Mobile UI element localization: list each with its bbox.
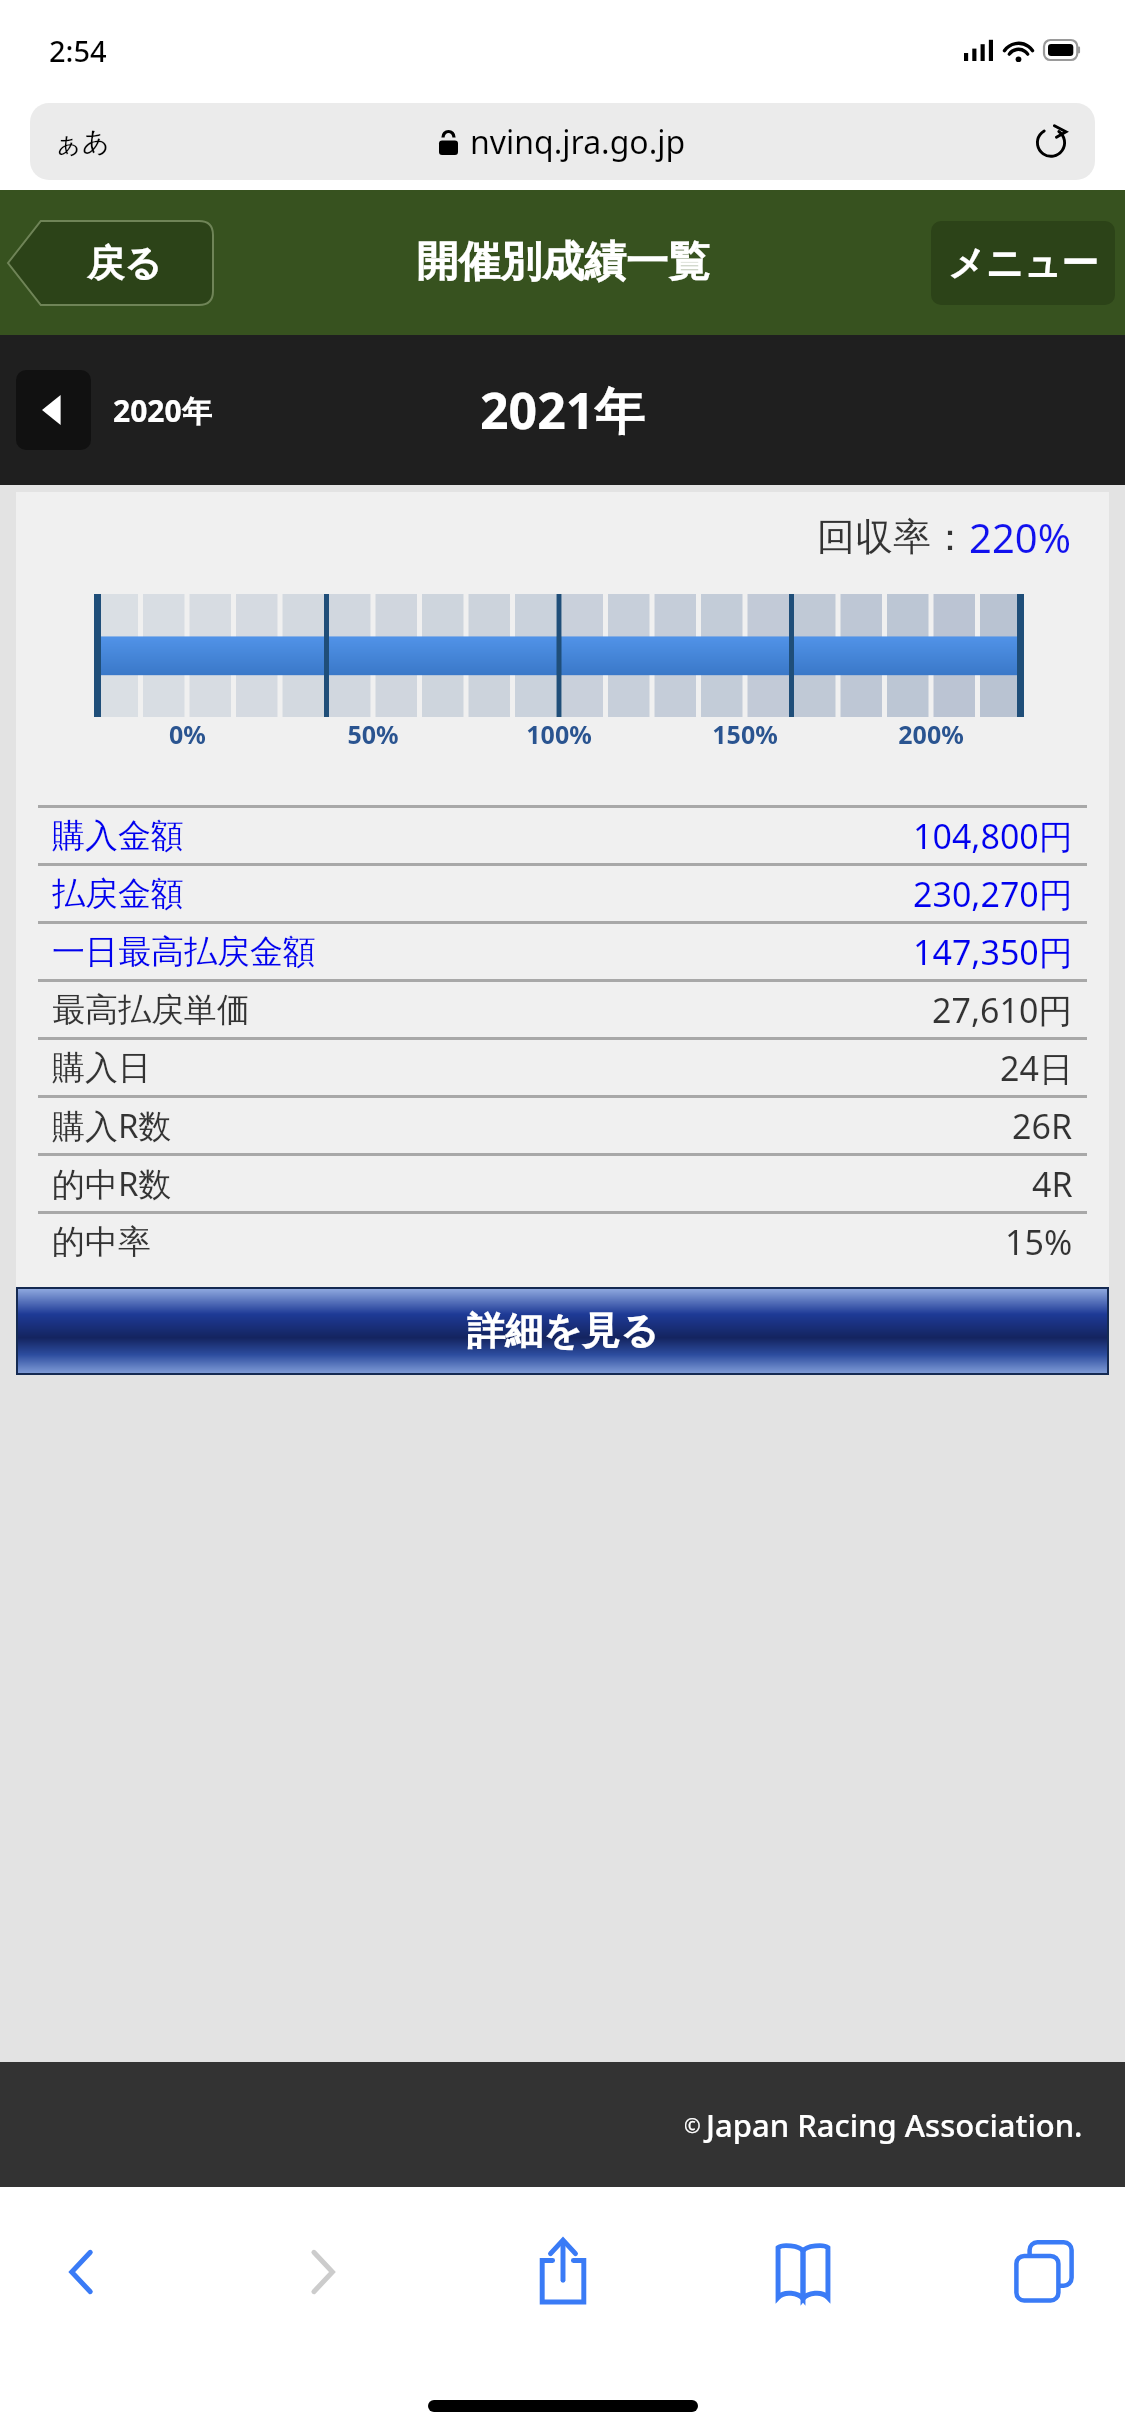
staticText: 230,270円 — [913, 871, 1073, 917]
button[interactable]: Share — [508, 2217, 618, 2327]
staticText: メニュー — [948, 240, 1099, 287]
staticText: 24日 — [1000, 1045, 1073, 1091]
staticText: 購入日 — [52, 1047, 151, 1089]
button[interactable]: Forward — [267, 2217, 377, 2327]
staticText: 的中率 — [52, 1221, 151, 1263]
staticText: 4R — [1032, 1161, 1073, 1207]
staticText: 2021年 — [480, 376, 645, 444]
button[interactable]: 詳細を見る — [18, 1289, 1107, 1373]
button[interactable]: ぁあ — [30, 103, 1095, 180]
staticText: 147,350円 — [913, 929, 1073, 975]
staticText: ぁあ — [54, 125, 110, 159]
staticText: 0% — [169, 717, 206, 751]
button[interactable]: 購入金額 — [38, 805, 1087, 863]
button[interactable]: 払戻金額 — [38, 863, 1087, 921]
staticText: 15% — [1005, 1219, 1073, 1265]
staticText: 100% — [526, 717, 592, 751]
staticText: 一日最高払戻金額 — [52, 931, 316, 973]
staticText: 回収率： — [817, 513, 969, 561]
button[interactable]: 最高払戻単価 — [38, 979, 1087, 1037]
staticText: nvinq.jra.go.jp — [470, 120, 686, 164]
button[interactable]: メニュー — [931, 221, 1115, 305]
button[interactable]: Bookmarks — [748, 2217, 858, 2327]
button[interactable]: 的中率 — [38, 1211, 1087, 1269]
staticText: 開催別成績一覧 — [416, 236, 710, 289]
button[interactable]: 一日最高払戻金額 — [38, 921, 1087, 979]
staticText: 的中R数 — [52, 1161, 172, 1206]
button[interactable]: 購入日 — [38, 1037, 1087, 1095]
staticText: 220% — [969, 510, 1071, 564]
staticText: 150% — [712, 717, 778, 751]
staticText: 200% — [898, 717, 964, 751]
button[interactable]: Tabs — [989, 2217, 1099, 2327]
button[interactable]: Reload — [1029, 120, 1073, 164]
staticText: 2:54 — [49, 31, 107, 70]
staticText: © — [684, 2112, 706, 2139]
staticText: 詳細を見る — [467, 1307, 659, 1355]
button[interactable]: 戻る — [8, 221, 213, 305]
button[interactable]: 的中R数 — [38, 1153, 1087, 1211]
staticText: 購入金額 — [52, 815, 184, 857]
staticText: 2020年 — [113, 390, 212, 431]
staticText: 払戻金額 — [52, 873, 184, 915]
staticText: 26R — [1012, 1103, 1073, 1149]
button[interactable]: 購入R数 — [38, 1095, 1087, 1153]
staticText: 50% — [347, 717, 399, 751]
staticText: 27,610円 — [932, 987, 1073, 1033]
staticText: 104,800円 — [913, 813, 1073, 859]
button[interactable]: Back — [26, 2217, 136, 2327]
button[interactable]: 2020年 — [16, 370, 212, 450]
staticText: 最高払戻単価 — [52, 989, 250, 1031]
staticText: 購入R数 — [52, 1103, 172, 1148]
staticText: 戻る — [87, 240, 162, 287]
staticText: Japan Racing Association. — [706, 2104, 1083, 2146]
